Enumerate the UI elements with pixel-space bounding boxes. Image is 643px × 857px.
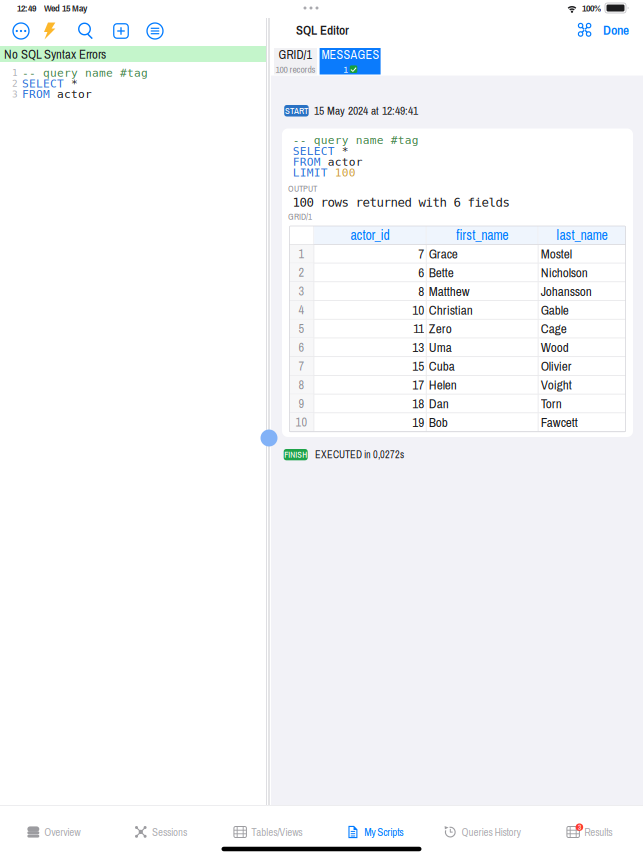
staticText: Uma: [429, 338, 452, 356]
staticText: 6: [299, 339, 305, 355]
staticText: START: [285, 105, 308, 117]
staticText: actor_id: [351, 226, 390, 244]
staticText: Sessions: [152, 825, 187, 839]
staticText: 6: [418, 263, 424, 281]
staticText: 1: [299, 245, 305, 262]
staticText: 8: [418, 282, 424, 300]
staticText: FINISH: [284, 449, 307, 460]
button[interactable]: More options: [8, 18, 34, 44]
staticText: 3: [299, 283, 305, 299]
staticText: 2: [299, 264, 305, 281]
button[interactable]: Run query: [37, 18, 63, 44]
staticText: SELECT: [293, 144, 342, 157]
staticText: 1: [343, 63, 347, 76]
button[interactable]: Overview: [0, 817, 107, 847]
button[interactable]: Queries History: [429, 817, 536, 847]
staticText: Voight: [541, 376, 572, 394]
staticText: 2: [12, 78, 18, 89]
staticText: 100%: [582, 1, 601, 15]
button[interactable]: My Scripts: [321, 817, 429, 847]
staticText: 12:49: [17, 1, 36, 15]
staticText: Nicholson: [541, 263, 588, 281]
staticText: actor: [328, 155, 363, 168]
staticText: Gable: [541, 301, 569, 319]
staticText: 13: [412, 338, 424, 356]
staticText: 15 May 2024 at 12:49:41: [314, 103, 418, 118]
staticText: Fawcett: [541, 413, 578, 431]
staticText: 100 records: [275, 63, 315, 76]
staticText: Wood: [541, 338, 569, 356]
staticText: Mostel: [541, 245, 572, 263]
staticText: 7: [299, 358, 305, 374]
staticText: Helen: [429, 376, 457, 394]
staticText: 8: [299, 376, 305, 393]
staticText: Zero: [429, 320, 452, 337]
staticText: Cuba: [429, 357, 455, 375]
staticText: Matthew: [429, 282, 470, 300]
staticText: 1: [12, 67, 18, 78]
button[interactable]: Search: [73, 18, 99, 44]
button[interactable]: GRID/1: [274, 48, 317, 74]
staticText: 17: [412, 376, 424, 394]
staticText: LIMIT: [293, 166, 335, 179]
staticText: EXECUTED in 0,0272s: [315, 448, 404, 461]
staticText: OUTPUT: [288, 183, 317, 194]
staticText: Done: [603, 21, 629, 39]
staticText: 11: [413, 320, 424, 337]
staticText: Christian: [429, 301, 473, 319]
staticText: Olivier: [541, 357, 572, 375]
staticText: 10: [296, 414, 308, 430]
staticText: 4: [299, 302, 305, 318]
staticText: -- query name #tag: [293, 134, 419, 147]
staticText: FROM: [22, 88, 57, 101]
staticText: 5: [299, 320, 305, 337]
staticText: 7: [418, 245, 424, 263]
staticText: first_name: [456, 226, 508, 244]
staticText: GRID/1: [288, 211, 312, 222]
staticText: 3: [578, 822, 581, 832]
staticText: 100 rows returned with 6 fields: [292, 195, 509, 210]
staticText: Johansson: [541, 282, 592, 300]
staticText: -- query name #tag: [22, 66, 148, 79]
staticText: FROM: [293, 155, 328, 168]
staticText: Torn: [541, 395, 562, 412]
staticText: Results: [584, 825, 612, 839]
staticText: Bette: [429, 263, 454, 281]
staticText: *: [71, 77, 78, 90]
staticText: Wed 15 May: [44, 1, 87, 15]
staticText: GRID/1: [278, 46, 312, 63]
staticText: No SQL Syntax Errors: [4, 45, 106, 63]
staticText: MESSAGES: [321, 46, 379, 63]
staticText: My Scripts: [364, 825, 403, 839]
staticText: SELECT: [22, 77, 71, 90]
button[interactable]: New script: [108, 18, 134, 44]
staticText: 3: [12, 89, 18, 100]
staticText: 9: [299, 395, 305, 412]
staticText: 15: [412, 357, 424, 375]
staticText: 19: [412, 413, 424, 431]
staticText: Dan: [429, 395, 449, 412]
staticText: Cage: [541, 320, 567, 337]
staticText: 18: [412, 395, 424, 412]
button[interactable]: Done: [581, 19, 629, 41]
staticText: SQL Editor: [296, 21, 349, 39]
staticText: 100: [335, 166, 356, 179]
staticText: last_name: [556, 226, 607, 244]
staticText: actor: [57, 88, 92, 101]
button[interactable]: Query plan: [574, 19, 596, 41]
staticText: Queries History: [461, 825, 520, 839]
staticText: 10: [412, 301, 424, 319]
staticText: Bob: [429, 413, 448, 431]
button[interactable]: 3: [536, 817, 643, 847]
button[interactable]: MESSAGES: [320, 48, 381, 74]
staticText: *: [342, 144, 349, 157]
button[interactable]: Snippets: [142, 18, 168, 44]
staticText: Overview: [44, 825, 80, 839]
button[interactable]: Tables/Views: [214, 817, 321, 847]
staticText: Tables/Views: [251, 825, 302, 839]
button[interactable]: Sessions: [107, 817, 214, 847]
staticText: Grace: [429, 245, 458, 263]
